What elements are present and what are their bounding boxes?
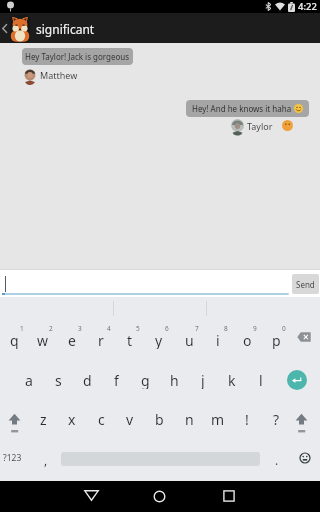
button[interactable]: a [16, 371, 42, 389]
staticText: significant [36, 21, 95, 37]
staticText: e [68, 331, 76, 349]
staticText: n [185, 410, 194, 428]
button[interactable]: g [132, 371, 158, 389]
staticText: t [127, 331, 133, 349]
button[interactable]: j [190, 371, 216, 389]
button[interactable]: n [176, 410, 202, 428]
button[interactable]: Hey! And he knows it haha [186, 100, 309, 117]
button[interactable]: f [103, 371, 129, 389]
staticText: s [55, 371, 62, 389]
staticText: , [44, 452, 48, 468]
button[interactable]: ?123 [1, 451, 24, 464]
button[interactable]: s [45, 371, 71, 389]
staticText: o [243, 331, 252, 349]
button[interactable]: l [248, 371, 274, 389]
staticText: z [40, 410, 47, 428]
button[interactable]: b [146, 410, 172, 428]
staticText: 6 [165, 324, 169, 332]
staticText: 8 [224, 324, 228, 332]
button[interactable]: ? [263, 410, 289, 428]
button[interactable] [298, 451, 312, 465]
button[interactable] [297, 332, 311, 342]
staticText: f [114, 371, 119, 389]
button[interactable] [8, 413, 22, 435]
button[interactable]: o [234, 331, 260, 349]
button[interactable]: d [74, 371, 100, 389]
button[interactable]: x [59, 410, 85, 428]
button[interactable]: Send [292, 274, 319, 294]
button[interactable] [223, 490, 235, 502]
staticText: p [272, 331, 281, 349]
staticText: q [10, 331, 19, 349]
staticText: ?123 [3, 452, 22, 464]
staticText: Hey Taylor! Jack is gorgeous [25, 51, 130, 62]
button[interactable]: v [117, 410, 143, 428]
button[interactable]: Hey Taylor! Jack is gorgeous [22, 48, 133, 65]
staticText: . [275, 452, 279, 468]
staticText: Hey! And he knows it haha [192, 103, 294, 114]
button[interactable]: m [205, 410, 231, 428]
staticText: w [37, 331, 49, 349]
button[interactable] [0, 20, 10, 36]
button[interactable]: y [146, 331, 172, 349]
staticText: 4 [107, 324, 111, 332]
staticText: 3 [78, 324, 82, 332]
staticText: Taylor [247, 120, 273, 132]
button[interactable]: ! [234, 410, 260, 428]
staticText: x [68, 410, 76, 428]
staticText: ! [245, 410, 249, 428]
button[interactable] [153, 490, 166, 503]
button[interactable]: p [263, 331, 289, 349]
staticText: h [170, 371, 179, 389]
button[interactable]: w [30, 331, 56, 349]
button[interactable]: k [219, 371, 245, 389]
staticText: Send [296, 279, 315, 290]
staticText: 4:22 [298, 0, 317, 13]
staticText: 0 [282, 324, 286, 332]
staticText: c [98, 410, 105, 428]
button[interactable]: r [88, 331, 114, 349]
button[interactable]: t [117, 331, 143, 349]
button[interactable]: e [59, 331, 85, 349]
button[interactable]: u [176, 331, 202, 349]
button[interactable] [295, 413, 309, 435]
staticText: b [155, 410, 164, 428]
button[interactable]: i [205, 331, 231, 349]
staticText: ? [273, 410, 280, 428]
staticText: m [211, 410, 225, 428]
button[interactable]: . [264, 451, 290, 469]
staticText: r [98, 331, 104, 349]
staticText: 2 [49, 324, 53, 332]
staticText: 7 [195, 324, 199, 332]
button[interactable]: , [33, 451, 59, 469]
staticText: j [201, 371, 205, 389]
staticText: y [155, 331, 163, 349]
staticText: l [259, 371, 263, 389]
staticText: v [126, 410, 134, 428]
staticText: d [83, 371, 92, 389]
button[interactable]: z [30, 410, 56, 428]
staticText: g [141, 371, 150, 389]
staticText: a [25, 371, 33, 389]
button[interactable]: h [161, 371, 187, 389]
button[interactable] [84, 490, 99, 502]
staticText: 1 [20, 324, 24, 332]
staticText: k [228, 371, 236, 389]
staticText: i [216, 331, 220, 349]
staticText: Matthew [40, 69, 78, 81]
button[interactable]: c [88, 410, 114, 428]
staticText: u [185, 331, 194, 349]
button[interactable]: q [1, 331, 27, 349]
staticText: 5 [136, 324, 140, 332]
button[interactable] [287, 370, 307, 390]
staticText: 9 [253, 324, 257, 332]
